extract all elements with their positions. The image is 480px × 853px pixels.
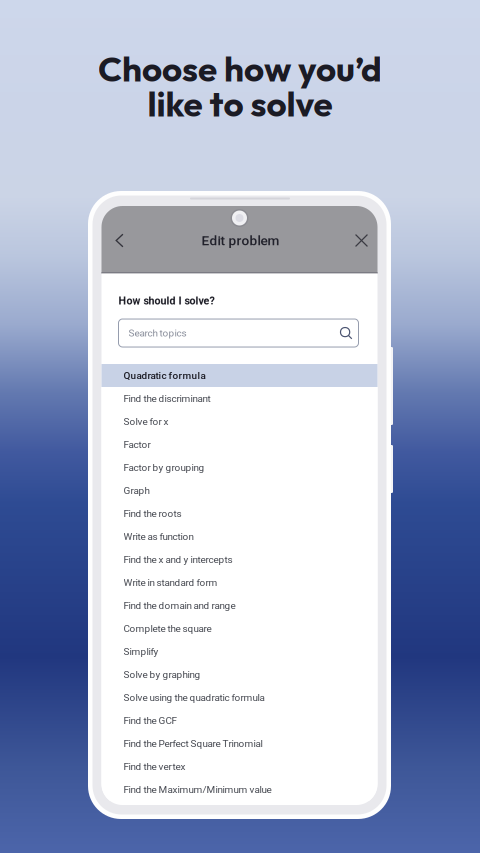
button[interactable]: Back	[104, 224, 134, 256]
button[interactable]: Quadratic formula	[101, 364, 377, 387]
button[interactable]: Solve by graphing	[101, 663, 377, 686]
staticText: like to solve	[147, 81, 332, 125]
button[interactable]: Find the domain and range	[101, 594, 377, 617]
staticText: How should I solve?	[118, 294, 214, 307]
button[interactable]: Find the GCF	[101, 709, 377, 732]
button[interactable]: Solve for x	[101, 410, 377, 433]
staticText: Graph	[123, 485, 149, 496]
button[interactable]: Find the discriminant	[101, 387, 377, 410]
staticText: Solve for x	[123, 416, 168, 427]
staticText: Find the Maximum/Minimum value	[123, 784, 271, 795]
staticText: Find the domain and range	[123, 600, 235, 611]
button[interactable]: Find the Maximum/Minimum value	[101, 778, 377, 801]
button[interactable]: Complete the square	[101, 617, 377, 640]
staticText: Find the discriminant	[123, 393, 210, 404]
button[interactable]: Write in standard form	[101, 571, 377, 594]
staticText: Factor by grouping	[123, 462, 204, 473]
button[interactable]: Solve using the quadratic formula	[101, 686, 377, 709]
staticText: Find the roots	[123, 508, 181, 519]
button[interactable]: Find the roots	[101, 502, 377, 525]
button[interactable]: Write as function	[101, 525, 377, 548]
button[interactable]: Factor	[101, 433, 377, 456]
staticText: Simplify	[123, 646, 158, 657]
staticText: Edit problem	[201, 232, 279, 248]
button[interactable]: Graph	[101, 479, 377, 502]
staticText: Write in standard form	[123, 577, 217, 588]
staticText: Factor	[123, 439, 150, 450]
button[interactable]: Find the x and y intercepts	[101, 548, 377, 571]
staticText: Quadratic formula	[123, 370, 205, 381]
staticText: Solve by graphing	[123, 669, 200, 680]
staticText: Find the GCF	[123, 715, 176, 726]
staticText: Solve using the quadratic formula	[123, 692, 264, 703]
staticText: Find the x and y intercepts	[123, 554, 232, 565]
button[interactable]: Search topics	[118, 319, 358, 347]
staticText: Find the Perfect Square Trinomial	[123, 738, 262, 749]
button[interactable]: Find the vertex	[101, 755, 377, 778]
button[interactable]: Find the Perfect Square Trinomial	[101, 732, 377, 755]
staticText: Choose how you’d	[98, 46, 382, 90]
button[interactable]: Simplify	[101, 640, 377, 663]
button[interactable]: Factor by grouping	[101, 456, 377, 479]
staticText: Write as function	[123, 531, 193, 542]
button[interactable]: Close	[346, 224, 376, 256]
staticText: Find the vertex	[123, 761, 185, 772]
staticText: Search topics	[128, 327, 186, 339]
staticText: Complete the square	[123, 623, 211, 634]
